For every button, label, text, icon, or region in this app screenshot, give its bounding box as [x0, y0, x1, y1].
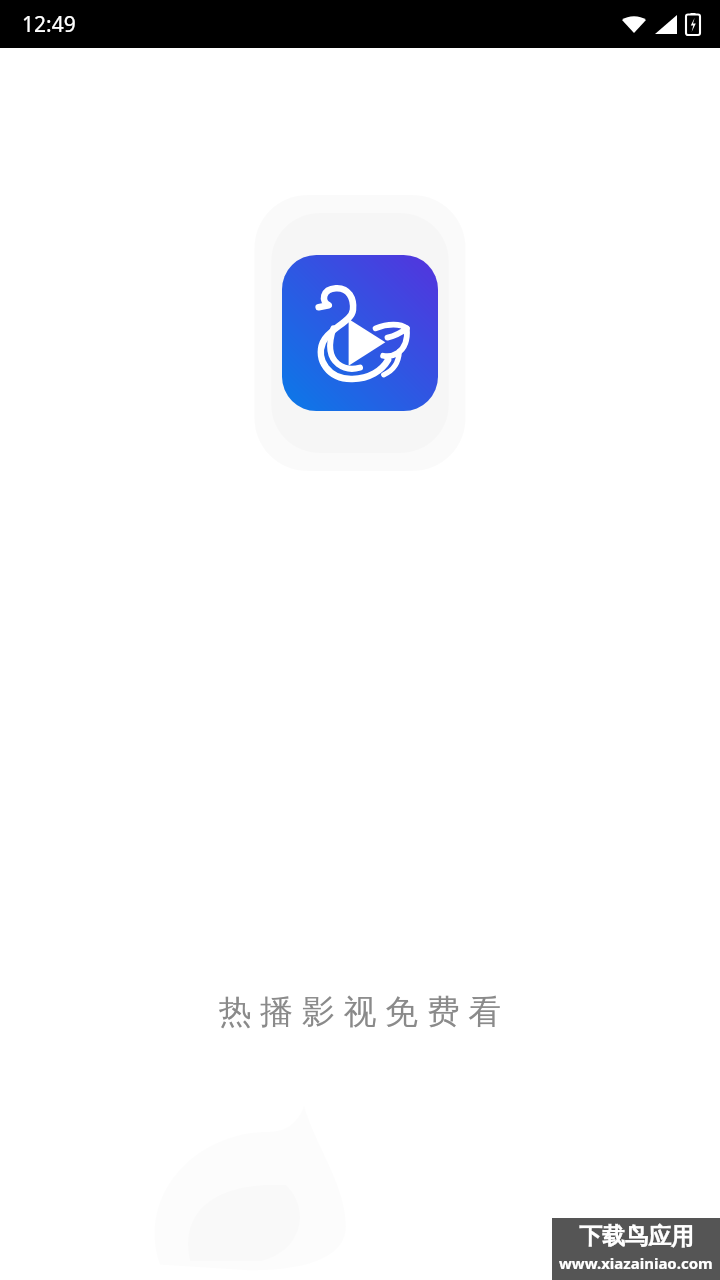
button[interactable]: App logo: [282, 255, 438, 411]
staticText: 下载鸟应用: [579, 1222, 694, 1251]
staticText: 热 播 影 视 免 费 看: [0, 988, 720, 1033]
staticText: 12:49: [22, 10, 76, 39]
staticText: www.xiazainiao.com: [559, 1253, 713, 1273]
